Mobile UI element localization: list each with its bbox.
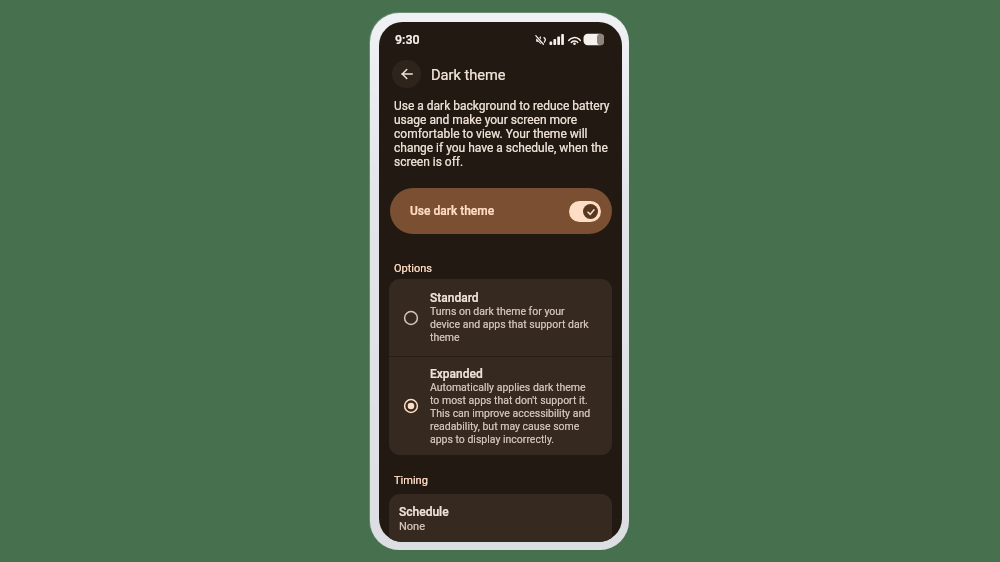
button[interactable]: Standard	[389, 279, 612, 356]
button[interactable]: Use dark theme	[390, 188, 612, 234]
button[interactable]: Use dark theme toggle	[569, 201, 601, 222]
staticText: Dark theme	[431, 66, 506, 83]
button[interactable]: Schedule	[389, 494, 612, 542]
staticText: Use dark theme	[410, 204, 495, 218]
staticText: Expanded	[430, 367, 483, 381]
staticText: Turns on dark theme for your device and …	[430, 305, 594, 344]
staticText: None	[399, 520, 426, 533]
staticText: Timing	[394, 474, 428, 487]
button[interactable]: Expanded	[389, 357, 612, 455]
button[interactable]: Back	[392, 60, 421, 88]
staticText: 9:30	[395, 32, 420, 47]
staticText: Schedule	[399, 505, 449, 519]
staticText: Automatically applies dark theme to most…	[430, 381, 594, 446]
staticText: Use a dark background to reduce battery …	[394, 99, 615, 169]
staticText: Options	[394, 262, 433, 275]
staticText: Standard	[430, 291, 479, 305]
